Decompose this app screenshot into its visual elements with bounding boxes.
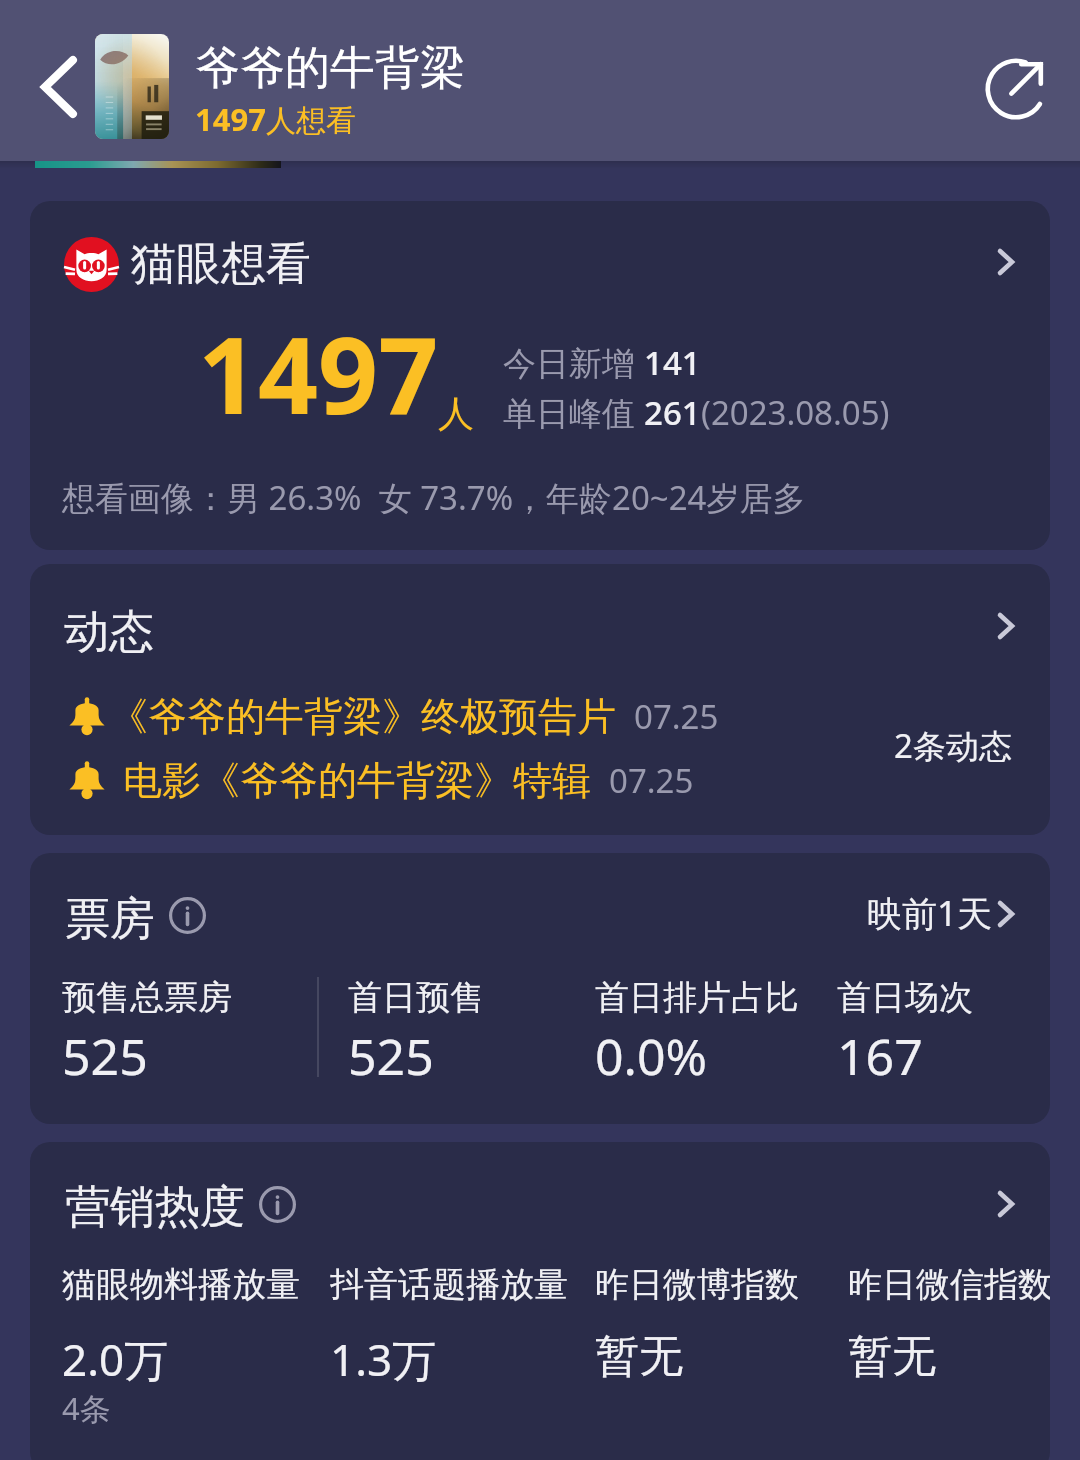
staticText: 141 — [644, 340, 701, 385]
staticText: 营销热度 — [65, 1179, 245, 1236]
staticText: 《爷爷的牛背梁》终极预告片 — [109, 692, 616, 741]
button[interactable]: 动态 — [30, 564, 1050, 835]
staticText: 今日新增 — [503, 340, 644, 385]
staticText: 猫眼物料播放量 — [62, 1263, 300, 1306]
staticText: 动态 — [64, 604, 154, 661]
staticText: 525 — [62, 1022, 148, 1090]
staticText: 票房 — [65, 891, 155, 948]
button[interactable]: Back — [18, 45, 100, 129]
staticText: 昨日微博指数 — [595, 1263, 799, 1306]
staticText: 首日场次 — [837, 976, 973, 1019]
staticText: 猫眼想看 — [131, 236, 311, 293]
staticText: 抖音话题播放量 — [330, 1263, 568, 1306]
staticText: 映前1天 — [867, 889, 993, 937]
staticText: 预售总票房 — [62, 976, 232, 1019]
staticText: 2条动态 — [894, 723, 1012, 768]
staticText: 1497 — [195, 98, 266, 140]
staticText: 1.3万 — [330, 1329, 437, 1389]
button[interactable]: 猫眼想看 — [30, 201, 1050, 550]
button[interactable]: 票房 — [30, 853, 1050, 1124]
staticText: 暂无 — [848, 1329, 936, 1384]
button[interactable]: 电影《爷爷的牛背梁》特辑 — [67, 754, 767, 806]
button[interactable]: 营销热度 — [30, 1142, 1050, 1460]
staticText: 首日排片占比 — [595, 976, 799, 1019]
staticText: 4条 — [62, 1387, 111, 1429]
button[interactable]: Share — [968, 41, 1063, 136]
staticText: 首日预售 — [348, 976, 484, 1019]
staticText: 525 — [348, 1022, 434, 1090]
staticText: 1497 — [198, 302, 439, 445]
staticText: 想看画像：男 26.3% 女 73.7%，年龄20~24岁居多 — [62, 475, 806, 520]
staticText: 暂无 — [595, 1329, 683, 1384]
staticText: 单日峰值 — [503, 390, 644, 435]
staticText: 爷爷的牛背梁 — [195, 40, 465, 97]
staticText: 人想看 — [266, 102, 356, 140]
staticText: 07.25 — [634, 694, 719, 739]
staticText: 电影《爷爷的牛背梁》特辑 — [123, 756, 591, 805]
staticText: 昨日微信指数 — [848, 1263, 1050, 1306]
staticText: 07.25 — [609, 758, 694, 803]
staticText: 0.0% — [595, 1022, 708, 1090]
staticText: (2023.08.05) — [701, 390, 890, 435]
staticText: 261 — [644, 390, 701, 435]
staticText: 2.0万 — [62, 1329, 169, 1389]
staticText: 人 — [438, 391, 474, 436]
staticText: 167 — [837, 1022, 923, 1090]
button[interactable]: 《爷爷的牛背梁》终极预告片 — [67, 690, 767, 742]
